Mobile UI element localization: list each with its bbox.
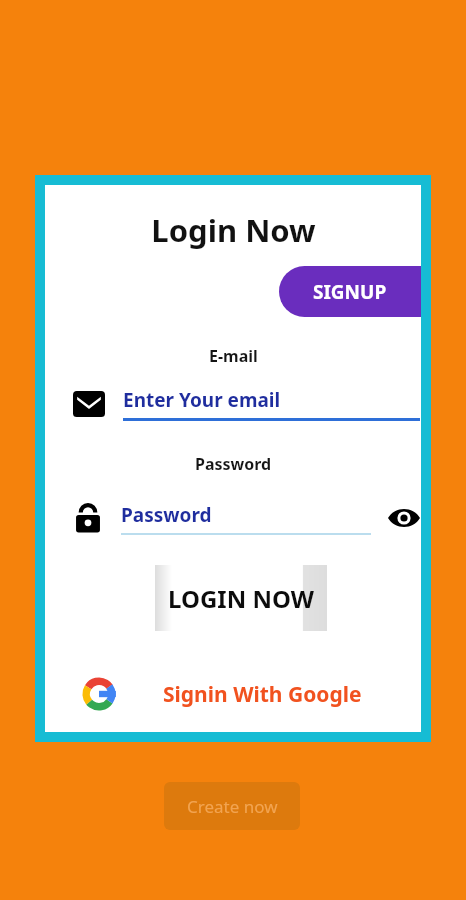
staticText: E-mail <box>209 345 258 367</box>
staticText: Password <box>121 502 212 528</box>
staticText: LOGIN NOW <box>168 582 314 615</box>
staticText: Signin With Google <box>163 680 362 709</box>
staticText: Password <box>195 453 272 475</box>
staticText: SIGNUP <box>313 279 387 305</box>
button[interactable]: Show password <box>385 499 423 537</box>
button[interactable]: Enter Your email <box>73 380 420 428</box>
staticText: Login Now <box>151 209 316 251</box>
button[interactable]: Create now <box>164 782 300 830</box>
button[interactable]: Password <box>121 502 371 535</box>
button[interactable]: SIGNUP <box>279 266 421 317</box>
button[interactable]: LOGIN NOW <box>155 565 327 631</box>
staticText: Create now <box>187 795 278 818</box>
button[interactable]: Signin With Google <box>59 667 407 721</box>
staticText: Enter Your email <box>123 387 281 413</box>
